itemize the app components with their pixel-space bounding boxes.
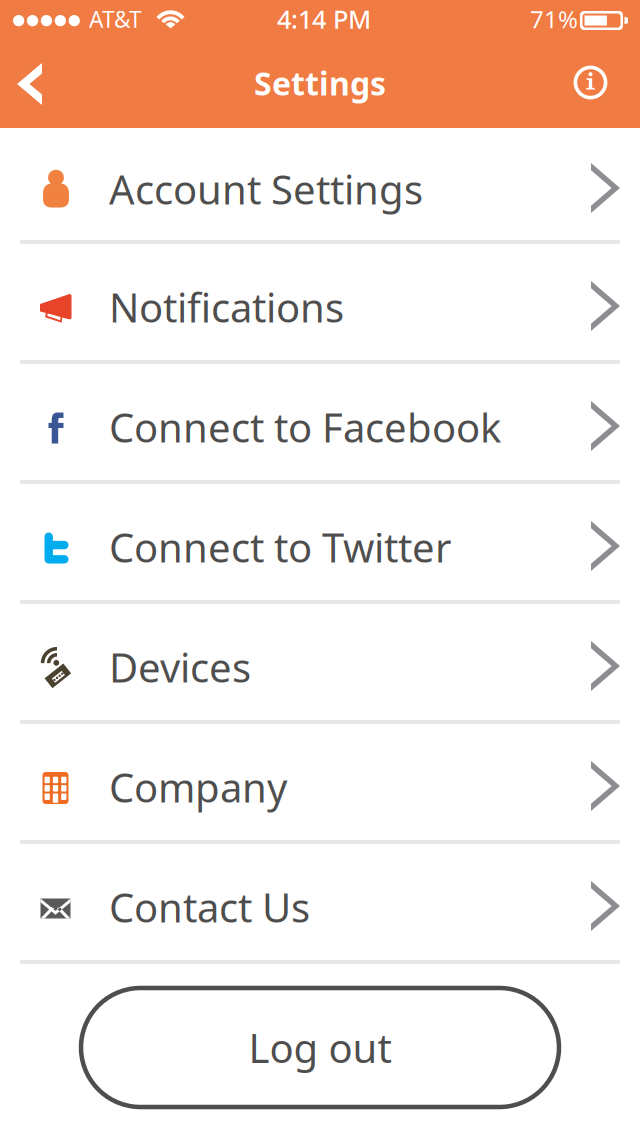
staticText: Connect to Facebook <box>109 400 501 453</box>
staticText: Contact Us <box>109 880 310 933</box>
button[interactable]: Information <box>544 44 640 128</box>
staticText: AT&T <box>89 4 142 34</box>
staticText: Account Settings <box>109 162 423 215</box>
button[interactable]: Contact Us <box>0 844 640 964</box>
staticText: Connect to Twitter <box>109 520 452 573</box>
staticText: 71% <box>530 3 578 35</box>
button[interactable]: Connect to Twitter <box>0 484 640 604</box>
button[interactable]: Log out <box>81 988 559 1107</box>
staticText: Company <box>109 760 287 813</box>
button[interactable]: Notifications <box>0 244 640 364</box>
staticText: Settings <box>254 62 386 104</box>
staticText: Log out <box>248 1021 391 1074</box>
button[interactable]: Back <box>0 44 72 128</box>
staticText: Devices <box>109 640 251 693</box>
staticText: 4:14 PM <box>277 2 371 36</box>
button[interactable]: Devices <box>0 604 640 724</box>
button[interactable]: Company <box>0 724 640 844</box>
button[interactable]: Account Settings <box>0 128 640 244</box>
staticText: Notifications <box>109 280 344 333</box>
button[interactable]: Connect to Facebook <box>0 364 640 484</box>
